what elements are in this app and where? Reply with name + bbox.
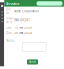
- staticText: Invoice: [6, 1, 19, 6]
- staticText: Bill to: [6, 8, 11, 15]
- staticText: Send: [29, 60, 36, 64]
- staticText: Date: [6, 26, 12, 29]
- staticText: INV-00241: [14, 18, 30, 22]
- staticText: Due: [6, 31, 12, 35]
- staticText: Acme Corporation: [14, 9, 39, 13]
- staticText: Invoice #: [6, 17, 14, 24]
- button[interactable]: Send: [27, 59, 38, 64]
- staticText: Notes: [6, 39, 14, 42]
- staticText: 26 Mar 2024: [14, 31, 32, 35]
- staticText: 12 Mar 2024: [14, 26, 32, 29]
